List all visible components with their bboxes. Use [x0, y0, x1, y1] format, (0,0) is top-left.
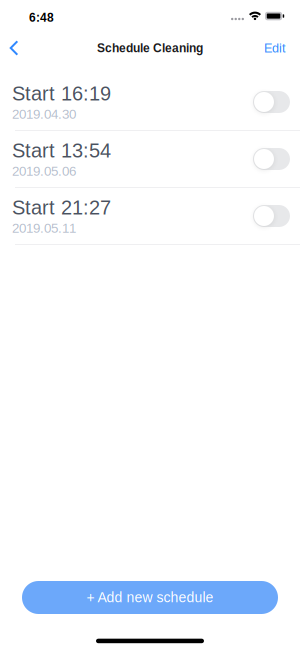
button[interactable]: Edit: [257, 33, 293, 63]
button[interactable]: Back: [1, 31, 27, 65]
staticText: Schedule Cleaning: [97, 41, 203, 55]
button[interactable]: Start 13:54: [0, 131, 300, 187]
staticText: 2019.04.30: [12, 107, 76, 122]
staticText: Start 13:54: [12, 139, 111, 162]
staticText: 6:48: [29, 11, 54, 24]
button[interactable]: Start 21:27: [0, 188, 300, 244]
staticText: 2019.05.06: [12, 164, 76, 179]
staticText: Start 16:19: [12, 82, 111, 105]
button[interactable]: Start 16:19: [0, 74, 300, 130]
staticText: + Add new schedule: [86, 590, 213, 605]
staticText: Start 21:27: [12, 196, 111, 219]
staticText: Edit: [264, 41, 286, 55]
staticText: 2019.05.11: [12, 221, 76, 236]
button[interactable]: + Add new schedule: [22, 581, 278, 614]
